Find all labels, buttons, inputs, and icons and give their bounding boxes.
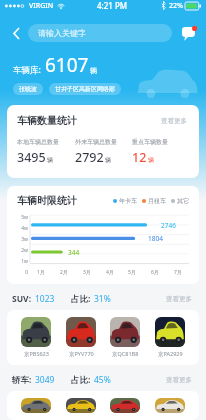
staticText: 3495 — [17, 149, 46, 166]
staticText: 查看更多 — [166, 376, 192, 384]
staticText: 本地车辆总数量 — [17, 138, 59, 146]
staticText: 7月 — [174, 269, 182, 276]
staticText: 甘井子区高新区网络部 — [55, 85, 115, 93]
staticText: 5w — [17, 214, 28, 221]
staticText: 车辆库: — [13, 64, 41, 76]
button[interactable]: 京PYV770 — [65, 317, 97, 358]
staticText: 车辆数量统计 — [17, 114, 77, 127]
button[interactable]: 京QD5510 — [109, 398, 141, 413]
staticText: 4:21 PM — [97, 0, 128, 11]
button[interactable]: 京NC1234 — [20, 398, 52, 413]
staticText: 1023 — [35, 293, 55, 305]
staticText: 31% — [94, 293, 111, 305]
button[interactable]: 查看更多 — [164, 374, 194, 386]
staticText: 占比: — [71, 293, 91, 305]
staticText: 京PYV770 — [69, 350, 94, 358]
staticText: 1月 — [37, 269, 45, 276]
staticText: SUV: — [12, 293, 32, 305]
staticText: 月租车 — [148, 197, 166, 205]
staticText: 4w — [17, 225, 28, 232]
staticText: 查看更多 — [166, 295, 192, 303]
staticText: 年卡车 — [119, 197, 137, 205]
staticText: 辆 — [47, 156, 53, 164]
button[interactable]: Messages — [179, 23, 199, 43]
button[interactable]: 张晓波 — [13, 83, 43, 95]
staticText: 22% — [169, 1, 183, 11]
staticText: 京QC81B8 — [112, 350, 139, 358]
staticText: 请输入关键字 — [38, 28, 86, 38]
staticText: 查看更多 — [161, 117, 187, 125]
staticText: 占比: — [71, 374, 91, 386]
staticText: 2746 — [161, 221, 176, 230]
staticText: 344 — [68, 248, 80, 257]
staticText: 辆 — [148, 156, 154, 164]
button[interactable]: 其它 — [171, 197, 189, 205]
button[interactable]: 请输入关键字 — [28, 24, 172, 42]
button[interactable]: 甘井子区高新区网络部 — [49, 83, 121, 95]
button[interactable]: 京PB7731 — [154, 398, 186, 413]
staticText: 1w — [17, 258, 28, 265]
staticText: 12 — [132, 149, 147, 166]
staticText: 6107 — [45, 52, 89, 78]
staticText: 京PA2929 — [158, 350, 183, 358]
staticText: 其它 — [177, 197, 189, 205]
button[interactable]: 年卡车 — [113, 197, 137, 205]
staticText: 外来车辆总数量 — [75, 138, 117, 146]
button[interactable]: 查看更多 — [159, 115, 189, 127]
button[interactable]: 月租车 — [142, 197, 166, 205]
staticText: VIRGIN — [29, 1, 54, 11]
staticText: 辆 — [105, 156, 111, 164]
staticText: 0 — [17, 269, 28, 276]
button[interactable]: 京QC81B8 — [109, 317, 141, 358]
button[interactable]: 查看更多 — [164, 293, 194, 305]
staticText: 2w — [17, 247, 28, 254]
staticText: 4月 — [106, 269, 114, 276]
staticText: 京PBS623 — [24, 350, 49, 358]
staticText: 车辆时限统计 — [17, 194, 77, 207]
staticText: 2月 — [60, 269, 68, 276]
staticText: 3月 — [83, 269, 91, 276]
staticText: 张晓波 — [19, 85, 37, 93]
staticText: 1804 — [148, 234, 163, 243]
staticText: 3049 — [35, 374, 55, 386]
button[interactable]: 京PA2929 — [154, 317, 186, 358]
button[interactable]: Back — [7, 24, 25, 42]
staticText: 6月 — [151, 269, 159, 276]
staticText: 3w — [17, 236, 28, 243]
staticText: 45% — [94, 374, 111, 386]
button[interactable]: 京PBS623 — [20, 317, 52, 358]
staticText: 2792 — [75, 149, 104, 166]
staticText: 轿车: — [12, 374, 32, 386]
staticText: 重点车辆数量 — [132, 138, 168, 146]
staticText: 辆 — [90, 66, 97, 75]
button[interactable]: 京PL8820 — [65, 398, 97, 413]
staticText: 5月 — [128, 269, 136, 276]
